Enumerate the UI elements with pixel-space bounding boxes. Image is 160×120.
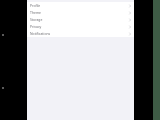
other: Open Notifications — [129, 32, 131, 36]
button[interactable]: Profile — [27, 2, 134, 9]
staticText: Storage — [30, 17, 43, 22]
button[interactable]: Notifications — [27, 30, 134, 37]
other: Open Storage — [129, 18, 131, 22]
staticText: Theme — [30, 10, 41, 15]
button[interactable]: Storage — [27, 16, 134, 23]
other: Open Privacy — [129, 25, 131, 29]
button[interactable]: Privacy — [27, 23, 134, 30]
other: Open Theme — [129, 11, 131, 15]
staticText: Privacy — [30, 24, 42, 29]
button[interactable]: Theme — [27, 9, 134, 16]
staticText: Notifications — [30, 31, 51, 36]
other: Open Profile — [129, 4, 131, 8]
staticText: Profile — [30, 3, 41, 8]
